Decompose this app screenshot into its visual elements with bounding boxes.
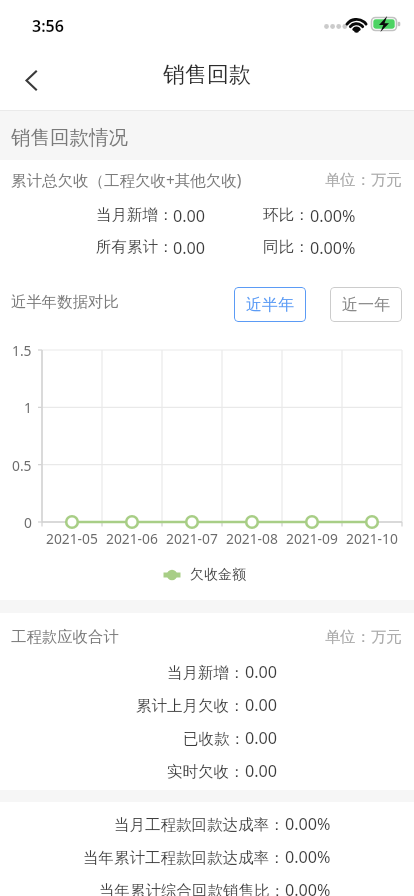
- staticText: 0.00: [173, 237, 206, 259]
- staticText: 0.00: [245, 760, 278, 782]
- staticText: 1.5: [12, 341, 32, 360]
- staticText: 2021-07: [166, 529, 218, 548]
- staticText: 累计上月欠收：: [136, 696, 245, 716]
- staticText: 近一年: [342, 295, 390, 315]
- staticText: 单位：万元: [325, 170, 402, 189]
- button[interactable]: 近半年: [234, 287, 306, 322]
- staticText: 0.5: [12, 456, 32, 475]
- staticText: 2021-10: [346, 529, 398, 548]
- staticText: 3:56: [32, 15, 64, 37]
- staticText: 当年累计工程款回款达成率：: [83, 848, 285, 868]
- staticText: 0.00: [245, 727, 278, 749]
- staticText: 2021-08: [226, 529, 278, 548]
- button[interactable]: Back: [12, 15, 414, 60]
- staticText: 2021-09: [286, 529, 338, 548]
- staticText: 0.00: [245, 694, 278, 716]
- staticText: 0.00: [245, 661, 278, 683]
- staticText: 近半年数据对比: [11, 292, 119, 311]
- button[interactable]: 近一年: [330, 287, 402, 322]
- staticText: 近半年: [246, 295, 294, 315]
- staticText: 实时欠收：: [167, 762, 245, 782]
- staticText: 累计总欠收（工程欠收+其他欠收): [11, 169, 242, 190]
- staticText: 当月工程款回款达成率：: [114, 815, 285, 835]
- staticText: 当月新增：: [167, 663, 245, 683]
- staticText: 已收款：: [183, 729, 245, 749]
- staticText: 0.00%: [310, 205, 356, 227]
- staticText: 同比：: [263, 237, 310, 257]
- staticText: 单位：万元: [325, 627, 402, 646]
- staticText: 当月新增：: [96, 205, 174, 225]
- staticText: 0.00%: [285, 813, 331, 835]
- staticText: 2021-05: [46, 529, 98, 548]
- staticText: 当年累计综合回款销售比：: [99, 881, 285, 896]
- staticText: 0.00%: [285, 846, 331, 868]
- staticText: 1: [24, 398, 32, 417]
- staticText: 2021-06: [106, 529, 158, 548]
- staticText: 0.00%: [285, 879, 331, 896]
- staticText: 销售回款情况: [11, 125, 128, 150]
- staticText: 环比：: [263, 205, 310, 225]
- staticText: 0.00: [173, 205, 206, 227]
- staticText: 销售回款: [163, 61, 251, 89]
- staticText: 0.00%: [310, 237, 356, 259]
- staticText: 所有累计：: [96, 237, 174, 257]
- staticText: 欠收金额: [190, 566, 246, 584]
- staticText: 0: [24, 513, 32, 532]
- staticText: 工程款应收合计: [11, 627, 119, 646]
